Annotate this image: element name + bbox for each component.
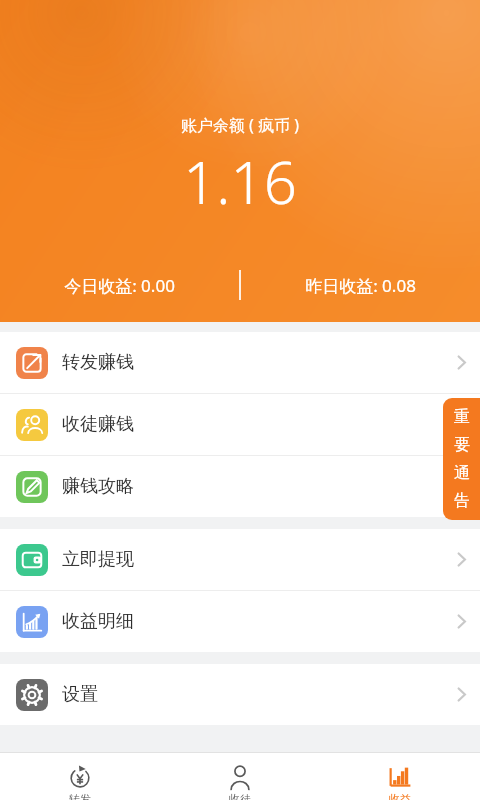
staticText: 收益 bbox=[389, 792, 411, 800]
staticText: 收徒 bbox=[229, 792, 251, 800]
staticText: 昨日收益: 0.08 bbox=[241, 274, 480, 297]
button[interactable]: 重要通告 bbox=[443, 398, 480, 520]
staticText: 账户余额 ( 疯币 ) bbox=[0, 114, 480, 136]
other: 收徒 bbox=[227, 764, 253, 790]
staticText: 赚钱攻略 bbox=[62, 475, 134, 498]
button[interactable]: 立即提现 bbox=[0, 529, 480, 590]
button[interactable]: 收益明细 bbox=[0, 591, 480, 652]
staticText: 通 bbox=[454, 463, 470, 483]
staticText: 告 bbox=[454, 491, 470, 511]
button[interactable]: 收徒赚钱 bbox=[0, 394, 480, 455]
button[interactable]: 收徒 bbox=[160, 753, 320, 800]
staticText: 收益明细 bbox=[62, 610, 134, 633]
staticText: 重 bbox=[454, 407, 470, 427]
staticText: 立即提现 bbox=[62, 548, 134, 571]
other: 收益 bbox=[387, 764, 413, 790]
staticText: 转发 bbox=[69, 792, 91, 800]
button[interactable]: 设置 bbox=[0, 664, 480, 725]
button[interactable]: 转发 bbox=[0, 753, 160, 800]
staticText: 1.16 bbox=[0, 142, 480, 221]
button[interactable]: 赚钱攻略 bbox=[0, 456, 480, 517]
staticText: 转发赚钱 bbox=[62, 351, 134, 374]
staticText: 今日收益: 0.00 bbox=[0, 274, 239, 297]
staticText: 要 bbox=[454, 435, 470, 455]
button[interactable]: 收益 bbox=[320, 753, 480, 800]
staticText: 设置 bbox=[62, 683, 98, 706]
button[interactable]: 转发赚钱 bbox=[0, 332, 480, 393]
other: 转发 bbox=[67, 764, 93, 790]
staticText: 收徒赚钱 bbox=[62, 413, 134, 436]
